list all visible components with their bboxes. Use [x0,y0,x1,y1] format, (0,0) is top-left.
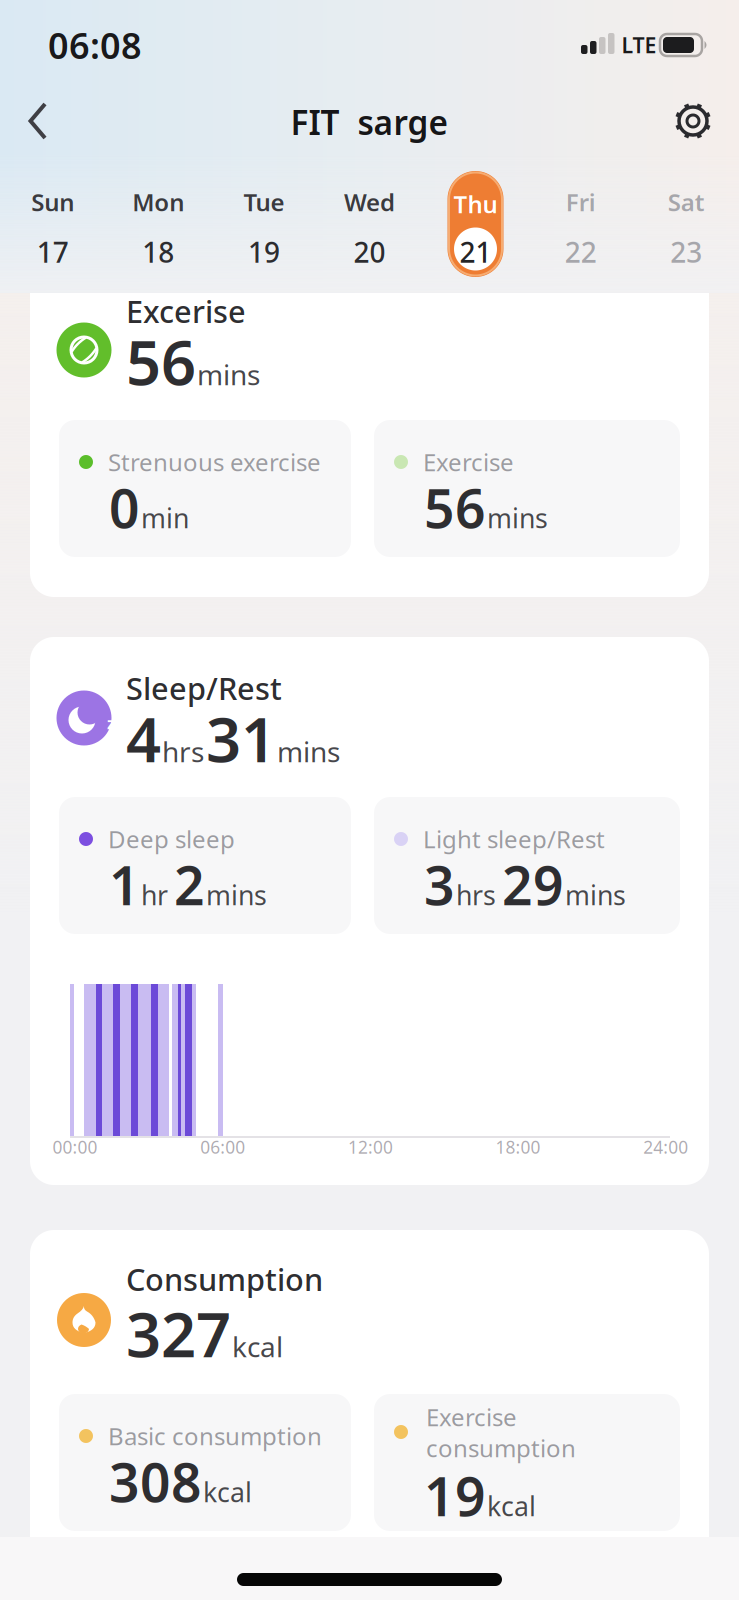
staticText: 24:00 [643,1135,688,1158]
staticText: Excerise [126,291,246,331]
staticText: hrs [456,877,496,912]
staticText: Basic consumption [108,1420,322,1452]
staticText: hrs [162,733,204,770]
staticText: Exercise [423,446,514,478]
staticText: 22 [565,233,597,271]
staticText: Fri [566,186,596,218]
staticText: 2 [174,849,205,920]
staticText: 308 [109,1446,202,1517]
staticText: 06:08 [48,21,142,69]
staticText: kcal [203,1474,252,1509]
staticText: mins [197,356,260,393]
staticText: mins [565,877,626,912]
staticText: LTE [621,31,656,59]
button[interactable]: Consumption [30,1230,709,1600]
staticText: 327 [126,1293,231,1374]
staticText: Mon [132,186,184,218]
button[interactable]: Tue [211,171,316,281]
staticText: Strenuous exercise [108,446,321,478]
staticText: 3 [424,849,455,920]
staticText: mins [206,877,267,912]
button[interactable]: Mon [106,171,211,281]
staticText: 31 [206,698,276,779]
staticText: 17 [37,233,69,271]
staticText: kcal [487,1488,536,1523]
staticText: 1 [109,849,140,920]
staticText: 20 [353,233,385,271]
staticText: 56 [126,321,196,402]
staticText: Sleep/Rest [126,668,282,708]
staticText: Wed [344,186,395,218]
staticText: 12:00 [348,1135,393,1158]
staticText: 21 [459,233,491,271]
staticText: 4 [126,698,161,779]
staticText: 29 [502,849,564,920]
staticText: kcal [232,1328,283,1365]
button[interactable]: z [30,637,709,1185]
staticText: Exercise [426,1401,517,1433]
button[interactable] [17,92,58,150]
staticText: mins [487,500,548,535]
staticText: 0 [109,472,140,543]
staticText: Light sleep/Rest [423,823,605,855]
staticText: Thu [453,188,497,220]
staticText: z [107,712,115,734]
staticText: 19 [424,1460,486,1531]
staticText: 56 [424,472,486,543]
staticText: Deep sleep [108,823,235,855]
staticText: 00:00 [52,1135,97,1158]
button[interactable] [674,102,712,140]
button[interactable] [447,171,503,277]
staticText: consumption [426,1432,576,1464]
staticText: 18:00 [496,1135,541,1158]
staticText: Sun [31,186,74,218]
button[interactable]: Excerise [30,293,709,597]
staticText: 19 [248,233,280,271]
staticText: 06:00 [200,1135,245,1158]
button[interactable]: Fri [528,171,633,281]
staticText: Tue [243,186,284,218]
staticText: Consumption [126,1259,323,1299]
staticText: FIT sarge [290,100,448,144]
staticText: 23 [670,233,702,271]
staticText: min [141,500,189,535]
staticText: Sat [668,186,705,218]
staticText: hr [141,877,168,912]
button[interactable]: Wed [317,171,422,281]
button[interactable]: Sun [0,171,105,281]
staticText: 18 [142,233,174,271]
staticText: mins [277,733,340,770]
button[interactable]: Sat [634,171,739,281]
